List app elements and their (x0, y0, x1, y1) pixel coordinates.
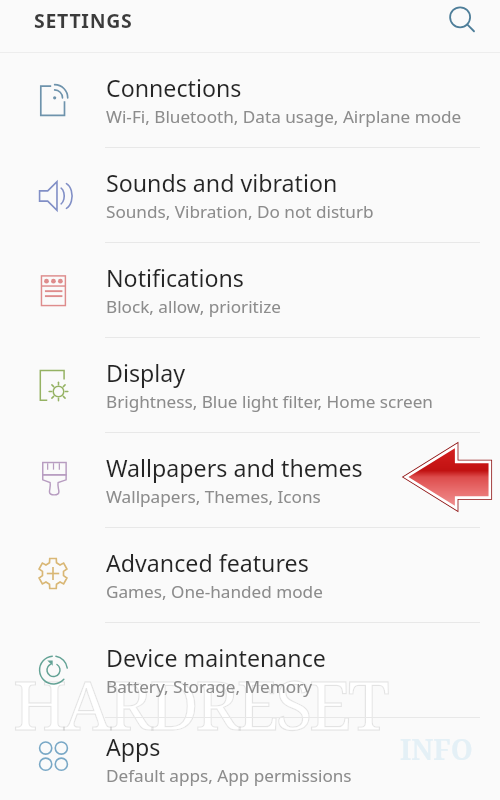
staticText: Sounds and vibration (106, 167, 338, 199)
staticText: SETTINGS (34, 7, 133, 34)
staticText: Connections (106, 72, 242, 104)
staticText: Advanced features (106, 547, 309, 579)
staticText: Wi-Fi, Bluetooth, Data usage, Airplane m… (106, 105, 462, 128)
staticText: Games, One-handed mode (106, 580, 323, 603)
staticText: Display (106, 357, 186, 389)
button[interactable]: Connections (0, 53, 500, 148)
button[interactable]: Apps (0, 718, 500, 800)
staticText: Wallpapers, Themes, Icons (106, 485, 321, 508)
staticText: Sounds, Vibration, Do not disturb (106, 200, 374, 223)
button[interactable]: Wallpapers and themes (0, 433, 500, 528)
button[interactable]: Search (437, 0, 485, 41)
staticText: INFO (400, 730, 473, 768)
staticText: Default apps, App permissions (106, 764, 352, 787)
staticText: HARDRESET (13, 657, 387, 750)
staticText: Block, allow, prioritize (106, 295, 281, 318)
staticText: Device maintenance (106, 642, 326, 674)
button[interactable]: Device maintenance (0, 623, 500, 718)
button[interactable]: Notifications (0, 243, 500, 338)
staticText: Battery, Storage, Memory (106, 675, 312, 698)
staticText: Brightness, Blue light filter, Home scre… (106, 390, 433, 413)
button[interactable]: Sounds and vibration (0, 148, 500, 243)
button[interactable]: Advanced features (0, 528, 500, 623)
staticText: Wallpapers and themes (106, 452, 363, 484)
staticText: Notifications (106, 262, 244, 294)
staticText: HARDRESET (13, 657, 387, 750)
button[interactable]: Display (0, 338, 500, 433)
staticText: Apps (106, 731, 161, 763)
